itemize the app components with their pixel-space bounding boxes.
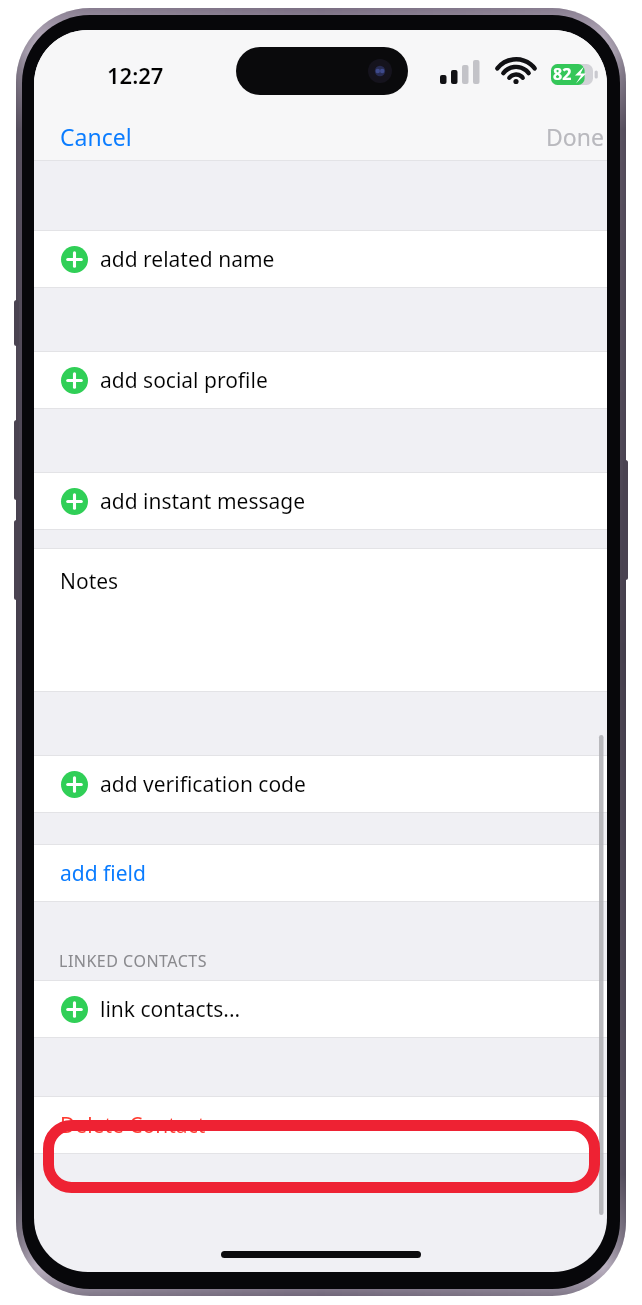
staticText: Done — [546, 121, 604, 152]
staticText: 12:27 — [107, 60, 164, 90]
staticText: link contacts... — [100, 995, 241, 1024]
button[interactable]: add related name — [34, 231, 607, 287]
staticText: Notes — [60, 567, 119, 596]
button[interactable]: link contacts... — [34, 981, 607, 1037]
button[interactable]: add social profile — [34, 352, 607, 408]
button[interactable]: add instant message — [34, 473, 607, 529]
button[interactable]: Delete Contact — [34, 1097, 607, 1153]
button[interactable]: add verification code — [34, 756, 607, 812]
staticText: add field — [60, 859, 146, 888]
staticText: Cancel — [60, 121, 132, 152]
button[interactable]: Cancel — [48, 114, 144, 159]
staticText: add social profile — [100, 366, 268, 395]
staticText: Delete Contact — [60, 1111, 206, 1140]
staticText: LINKED CONTACTS — [59, 950, 208, 972]
button[interactable]: Done — [534, 114, 607, 159]
button[interactable]: Notes — [34, 549, 607, 691]
button[interactable]: add field — [34, 845, 607, 901]
staticText: add related name — [100, 245, 275, 274]
staticText: add verification code — [100, 770, 306, 799]
staticText: 82 — [553, 63, 572, 85]
staticText: add instant message — [100, 487, 306, 516]
